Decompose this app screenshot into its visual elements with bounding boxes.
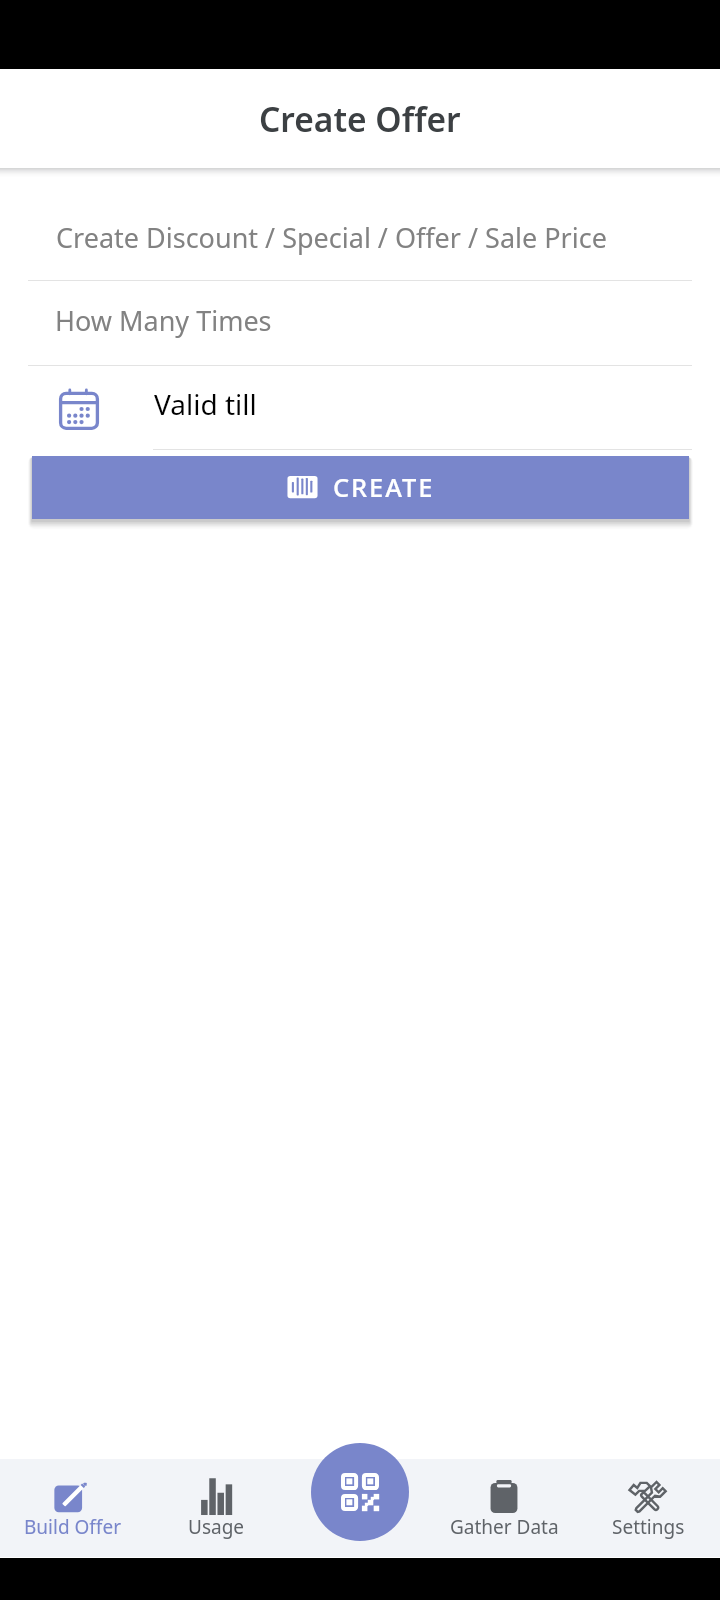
staticText: Gather Data bbox=[450, 1514, 559, 1540]
staticText: Valid till bbox=[154, 385, 257, 423]
button[interactable]: Pick date bbox=[56, 386, 102, 432]
staticText: How Many Times bbox=[55, 302, 272, 339]
staticText: Usage bbox=[188, 1514, 245, 1540]
button[interactable]: Settings bbox=[576, 1459, 720, 1557]
button[interactable] bbox=[0, 281, 720, 364]
button[interactable]: Scan QR code bbox=[311, 1443, 409, 1541]
staticText: Settings bbox=[612, 1514, 685, 1540]
staticText: Create Offer bbox=[259, 96, 461, 142]
staticText: Create Discount / Special / Offer / Sale… bbox=[56, 219, 607, 256]
button[interactable]: Gather Data bbox=[432, 1459, 576, 1557]
button[interactable] bbox=[0, 196, 720, 280]
staticText: Build Offer bbox=[24, 1514, 121, 1540]
staticText: CREATE bbox=[333, 470, 435, 505]
button[interactable]: CREATE bbox=[32, 456, 689, 519]
button[interactable]: Build Offer bbox=[0, 1459, 144, 1557]
button[interactable]: Usage bbox=[144, 1459, 288, 1557]
button[interactable]: Create Offer bbox=[0, 69, 720, 168]
